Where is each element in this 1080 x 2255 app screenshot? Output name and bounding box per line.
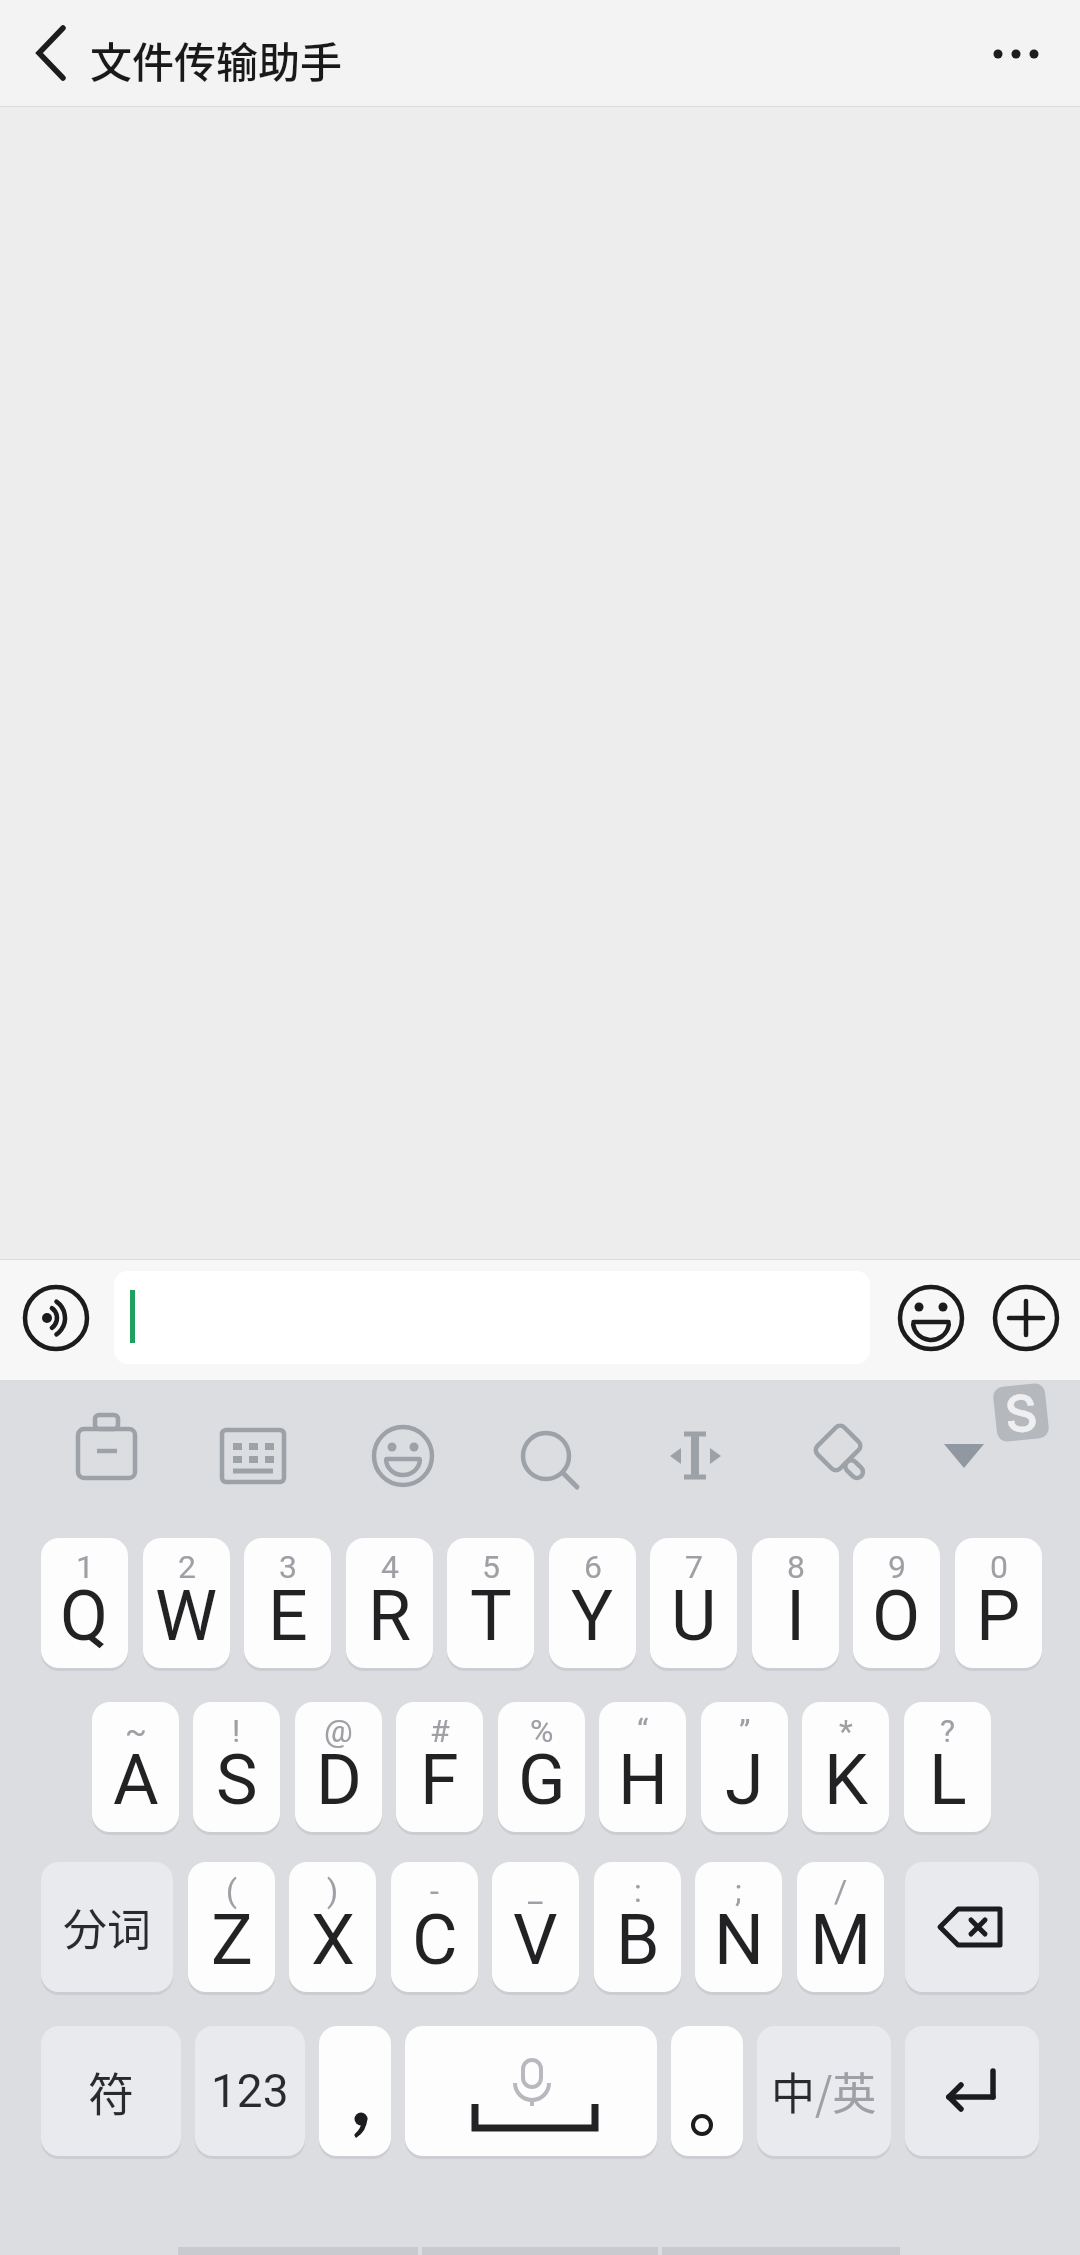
staticText: / bbox=[834, 1872, 848, 1910]
staticText: J bbox=[725, 1739, 764, 1821]
staticText: S bbox=[1003, 1384, 1039, 1441]
staticText: X bbox=[311, 1899, 355, 1981]
staticText: I bbox=[786, 1575, 806, 1657]
staticText: ” bbox=[739, 1712, 751, 1750]
staticText: A bbox=[113, 1739, 159, 1821]
staticText: K bbox=[824, 1739, 868, 1821]
staticText: 符 bbox=[88, 2058, 134, 2125]
staticText: 7 bbox=[685, 1548, 703, 1586]
staticText: _ bbox=[528, 1872, 543, 1910]
staticText: V bbox=[513, 1899, 558, 1981]
staticText: S bbox=[216, 1739, 258, 1821]
staticText: 3 bbox=[279, 1548, 297, 1586]
staticText: P bbox=[976, 1575, 1021, 1657]
staticText: 4 bbox=[381, 1548, 399, 1586]
staticText: E bbox=[268, 1575, 308, 1657]
staticText: % bbox=[530, 1712, 554, 1750]
staticText: # bbox=[430, 1712, 450, 1750]
staticText: L bbox=[929, 1739, 967, 1821]
staticText: : bbox=[634, 1872, 642, 1910]
staticText: 5 bbox=[482, 1548, 500, 1586]
staticText: ! bbox=[232, 1712, 241, 1750]
staticText: 文件传输助手 bbox=[90, 29, 343, 90]
staticText: W bbox=[155, 1575, 218, 1657]
staticText: - bbox=[430, 1872, 439, 1910]
staticText: Y bbox=[571, 1575, 614, 1657]
staticText: 8 bbox=[787, 1548, 805, 1586]
staticText: D bbox=[316, 1739, 362, 1821]
staticText: U bbox=[671, 1575, 717, 1657]
staticText: ) bbox=[327, 1872, 339, 1910]
staticText: G bbox=[518, 1739, 566, 1821]
staticText: ; bbox=[735, 1872, 742, 1910]
staticText: 分词 bbox=[63, 1895, 151, 1959]
staticText: @ bbox=[324, 1712, 353, 1750]
staticText: ~ bbox=[125, 1712, 147, 1750]
staticText: M bbox=[810, 1899, 872, 1981]
staticText: “ bbox=[637, 1712, 649, 1750]
staticText: H bbox=[618, 1739, 668, 1821]
staticText: B bbox=[616, 1899, 660, 1981]
staticText: * bbox=[839, 1712, 853, 1750]
staticText: ( bbox=[226, 1872, 237, 1910]
staticText: 1 bbox=[76, 1548, 94, 1586]
staticText: Q bbox=[60, 1575, 109, 1657]
staticText: 0 bbox=[990, 1548, 1008, 1586]
staticText: F bbox=[420, 1739, 459, 1821]
staticText: N bbox=[714, 1899, 764, 1981]
staticText: R bbox=[368, 1575, 412, 1657]
staticText: O bbox=[872, 1575, 921, 1657]
staticText: 9 bbox=[888, 1548, 906, 1586]
staticText: 2 bbox=[178, 1548, 196, 1586]
staticText: Z bbox=[211, 1899, 253, 1981]
staticText: 中/英 bbox=[771, 2059, 877, 2123]
staticText: T bbox=[470, 1575, 512, 1657]
staticText: C bbox=[412, 1899, 458, 1981]
staticText: ? bbox=[940, 1712, 956, 1750]
staticText: 123 bbox=[211, 2064, 289, 2118]
staticText: 6 bbox=[584, 1548, 602, 1586]
